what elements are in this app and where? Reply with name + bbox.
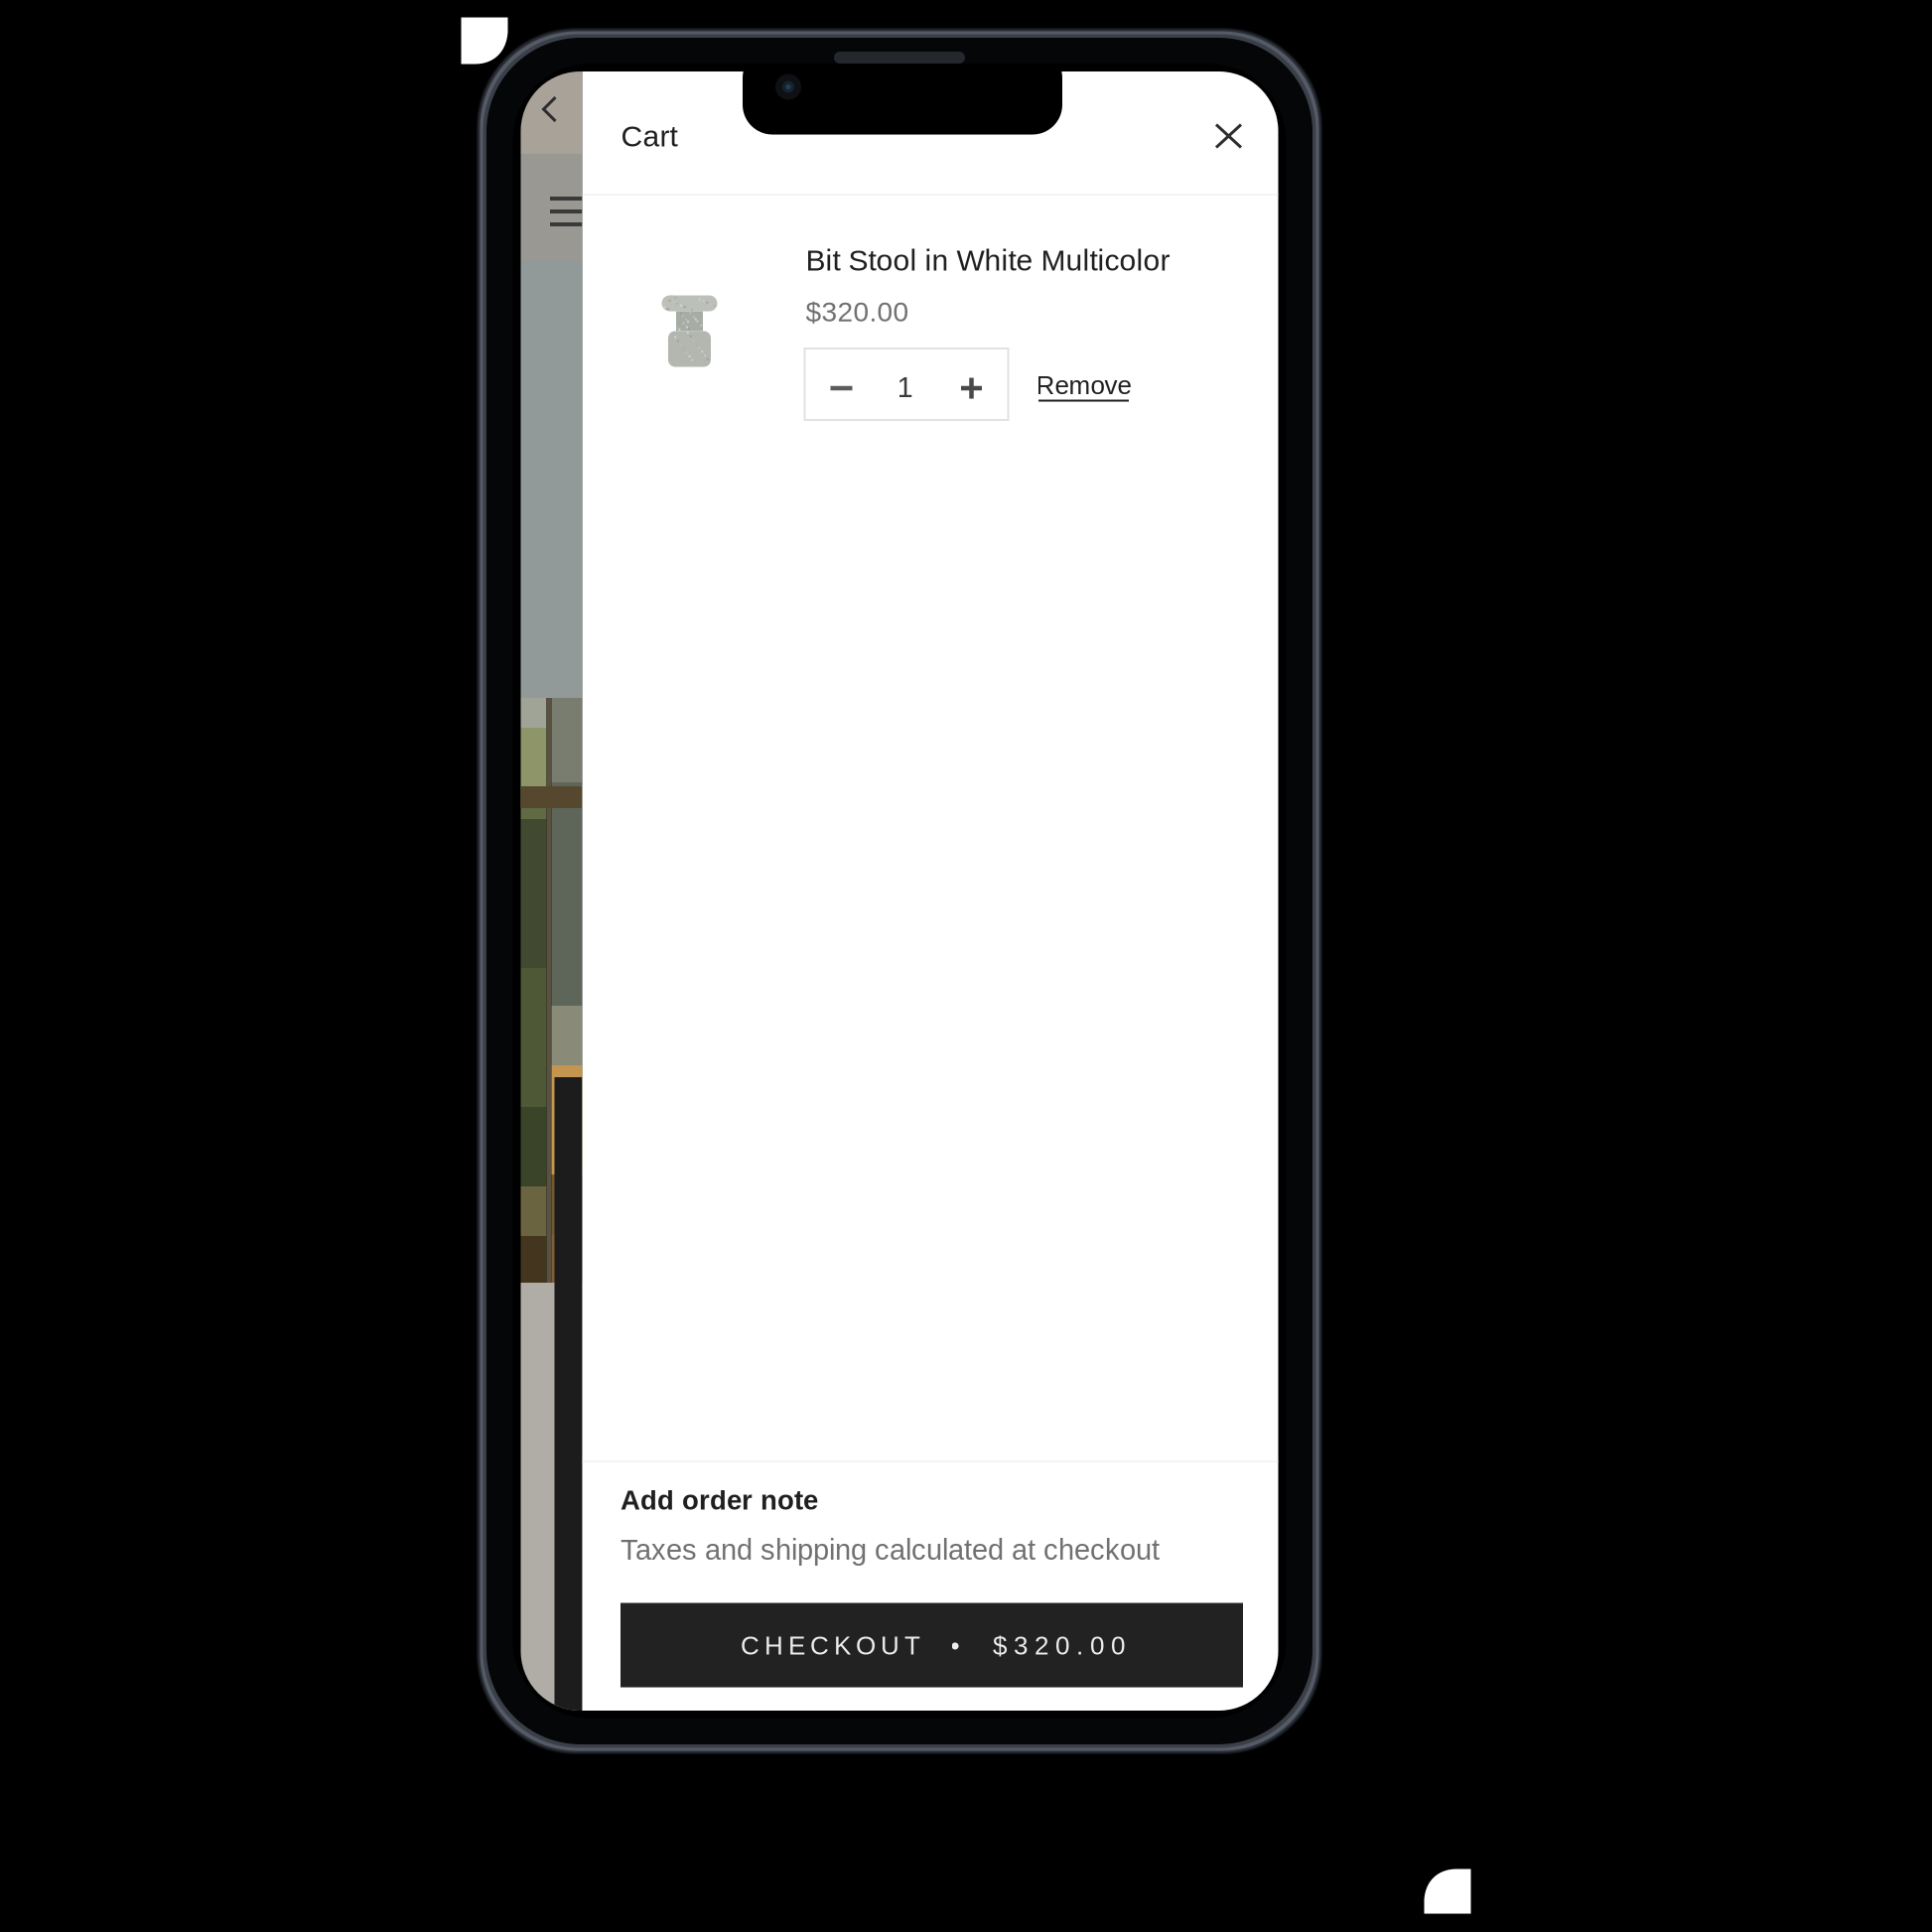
button[interactable]: Back — [540, 94, 561, 124]
button[interactable]: Add order note — [621, 1478, 1243, 1522]
staticText: Taxes and shipping calculated at checkou… — [621, 1534, 1160, 1566]
staticText: 1 — [897, 371, 913, 403]
staticText: • — [951, 1631, 960, 1660]
button[interactable]: Remove — [1029, 366, 1138, 406]
button[interactable]: Decrease quantity — [808, 353, 875, 423]
button[interactable]: Close cart — [1191, 98, 1266, 174]
button[interactable]: Increase quantity — [938, 353, 1005, 423]
staticText: $320.00 — [993, 1631, 1125, 1660]
staticText: Remove — [1036, 371, 1131, 400]
staticText: Bit Stool in White Multicolor — [806, 243, 1170, 277]
button[interactable]: Menu — [549, 193, 584, 230]
button[interactable]: CHECKOUT — [621, 1603, 1243, 1687]
staticText: Cart — [621, 119, 678, 153]
staticText: CHECKOUT — [741, 1631, 920, 1660]
staticText: Add order note — [621, 1485, 818, 1515]
staticText: $320.00 — [806, 296, 909, 327]
